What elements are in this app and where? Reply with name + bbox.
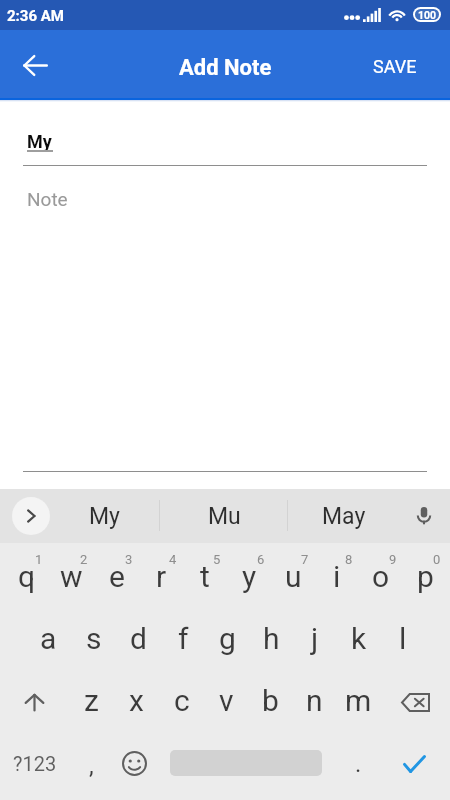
button[interactable]: j	[293, 609, 337, 671]
staticText: 1	[35, 552, 43, 567]
staticText: My	[27, 131, 52, 152]
button[interactable]: ,	[70, 733, 112, 800]
staticText: o	[372, 559, 390, 594]
staticText: e	[109, 559, 125, 594]
button[interactable]: a	[26, 609, 71, 671]
button[interactable]: i	[315, 547, 359, 609]
staticText: b	[262, 683, 279, 718]
staticText: w	[60, 559, 83, 594]
staticText: j	[311, 621, 319, 656]
staticText: f	[178, 621, 189, 656]
staticText: u	[285, 559, 302, 594]
staticText: SAVE	[373, 56, 417, 77]
button[interactable]: n	[292, 671, 336, 733]
staticText: x	[129, 683, 144, 718]
button[interactable]: m	[336, 671, 380, 733]
button[interactable]: May	[284, 489, 404, 543]
button[interactable]: b	[248, 671, 292, 733]
staticText: .	[355, 750, 362, 778]
staticText: p	[417, 559, 434, 594]
staticText: Mu	[208, 503, 241, 530]
staticText: 2	[80, 552, 88, 567]
staticText: Add Note	[179, 55, 272, 81]
button[interactable]: Backspace	[380, 671, 450, 733]
staticText: 3	[125, 552, 133, 567]
button[interactable]: h	[249, 609, 293, 671]
button[interactable]: Mu	[164, 489, 284, 543]
button[interactable]: o	[359, 547, 403, 609]
button[interactable]: u	[271, 547, 315, 609]
staticText: May	[322, 503, 366, 530]
button[interactable]: s	[71, 609, 116, 671]
button[interactable]: y	[227, 547, 271, 609]
staticText: ?123	[13, 752, 57, 775]
button[interactable]: More suggestions	[12, 497, 50, 535]
button[interactable]: Emoji	[112, 733, 157, 800]
staticText: 100	[418, 9, 437, 20]
button[interactable]: Back	[11, 41, 59, 89]
button[interactable]: z	[69, 671, 114, 733]
staticText: 9	[389, 552, 397, 567]
staticText: k	[351, 621, 367, 656]
staticText: 4	[169, 552, 177, 567]
button[interactable]: x	[114, 671, 159, 733]
button[interactable]: e	[94, 547, 139, 609]
button[interactable]: ?123	[0, 733, 70, 800]
staticText: l	[399, 621, 407, 656]
button[interactable]: Title	[23, 120, 427, 166]
staticText: ,	[89, 752, 94, 780]
staticText: i	[333, 559, 341, 594]
staticText: 8	[345, 552, 353, 567]
staticText: 0	[433, 552, 441, 567]
staticText: m	[345, 683, 372, 718]
button[interactable]: f	[161, 609, 205, 671]
staticText: z	[84, 683, 99, 718]
staticText: d	[130, 621, 147, 656]
staticText: q	[18, 559, 36, 594]
button[interactable]: q	[4, 547, 49, 609]
staticText: y	[242, 559, 257, 594]
staticText: g	[219, 621, 236, 656]
button[interactable]: v	[204, 671, 248, 733]
button[interactable]: My	[44, 489, 164, 543]
button[interactable]: p	[403, 547, 447, 609]
button[interactable]: SAVE	[367, 46, 423, 87]
staticText: s	[86, 621, 102, 656]
button[interactable]: c	[159, 671, 204, 733]
button[interactable]: w	[49, 547, 94, 609]
button[interactable]: t	[183, 547, 227, 609]
staticText: n	[306, 683, 323, 718]
button[interactable]: g	[205, 609, 249, 671]
staticText: 5	[213, 552, 221, 567]
staticText: h	[263, 621, 280, 656]
button[interactable]: .	[337, 733, 379, 800]
button[interactable]: Note body	[23, 178, 427, 472]
staticText: a	[40, 621, 57, 656]
staticText: My	[89, 503, 120, 530]
button[interactable]: r	[139, 547, 183, 609]
staticText: t	[200, 559, 210, 594]
staticText: 2:36 AM	[7, 7, 64, 25]
staticText: 6	[257, 552, 265, 567]
staticText: r	[156, 559, 167, 594]
staticText: 7	[301, 552, 309, 567]
button[interactable]: k	[337, 609, 381, 671]
staticText: c	[174, 683, 190, 718]
button[interactable]: l	[381, 609, 425, 671]
button[interactable]: Voice input	[404, 496, 444, 536]
button[interactable]: d	[116, 609, 161, 671]
button[interactable]: Shift	[0, 671, 69, 733]
staticText: Note	[27, 188, 68, 210]
staticText: v	[219, 683, 234, 718]
button[interactable]: Enter	[379, 733, 450, 800]
